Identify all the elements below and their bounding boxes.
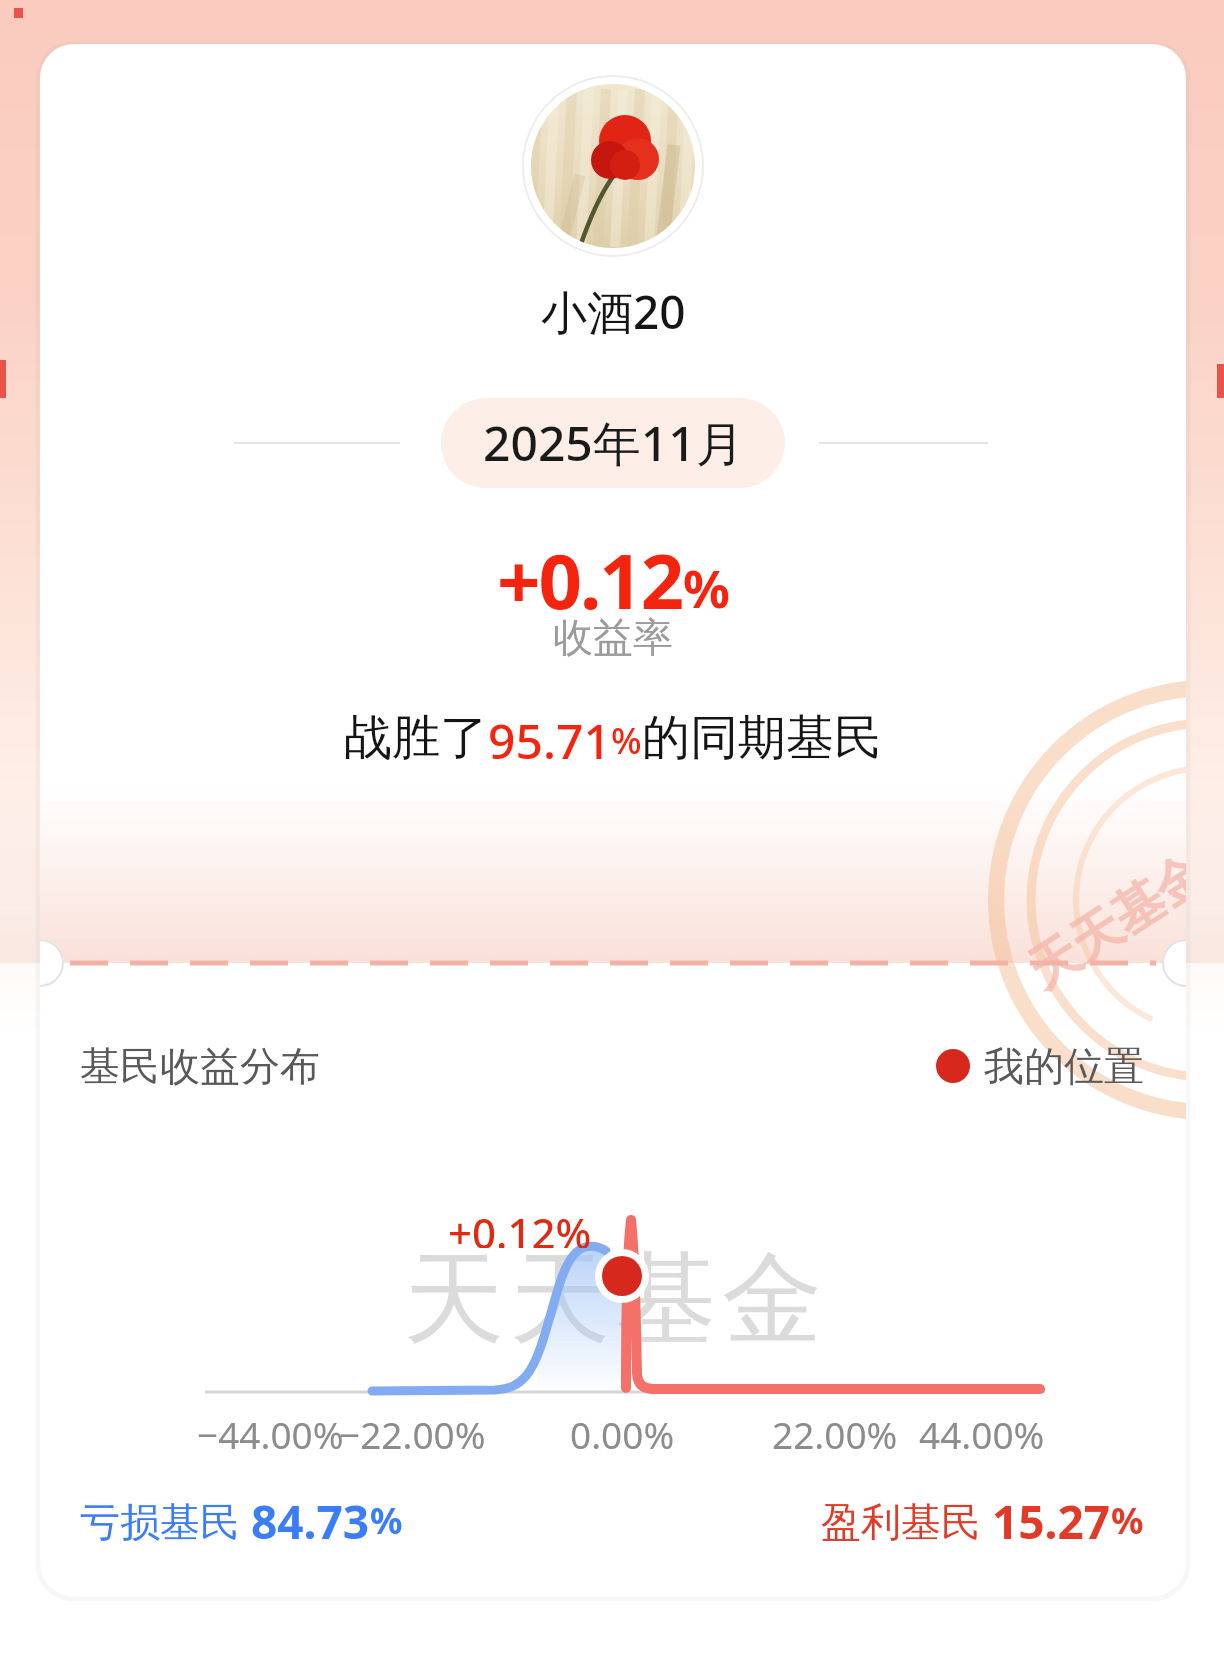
- staticText: 95.71: [488, 708, 611, 768]
- staticText: 收益率: [553, 612, 673, 662]
- staticText: 2025年11月: [483, 410, 744, 476]
- staticText: 亏损基民: [80, 1493, 251, 1548]
- staticText: %: [683, 552, 730, 623]
- staticText: −22.00%: [339, 1409, 486, 1455]
- staticText: +0.12: [497, 528, 683, 628]
- staticText: 22.00%: [772, 1409, 898, 1455]
- staticText: 15.27: [992, 1490, 1111, 1550]
- staticText: 天天基金: [1016, 840, 1186, 1002]
- staticText: +0.12%: [448, 1204, 592, 1248]
- staticText: %: [611, 716, 642, 765]
- staticText: −44.00%: [197, 1409, 344, 1455]
- staticText: 天天基金: [401, 1237, 825, 1357]
- staticText: %: [370, 1496, 403, 1545]
- staticText: 84.73: [251, 1490, 370, 1550]
- staticText: 基民收益分布: [80, 1041, 320, 1091]
- staticText: 小酒20: [541, 280, 686, 340]
- staticText: 盈利基民: [821, 1493, 992, 1548]
- staticText: 我的位置: [984, 1041, 1144, 1091]
- button[interactable]: 我的位置: [936, 1041, 1144, 1091]
- button[interactable]: 2025年11月: [441, 398, 785, 488]
- staticText: %: [1111, 1496, 1144, 1545]
- staticText: 的同期基民: [642, 708, 882, 768]
- staticText: 战胜了: [344, 708, 488, 768]
- staticText: 44.00%: [919, 1409, 1045, 1455]
- staticText: 0.00%: [570, 1409, 675, 1455]
